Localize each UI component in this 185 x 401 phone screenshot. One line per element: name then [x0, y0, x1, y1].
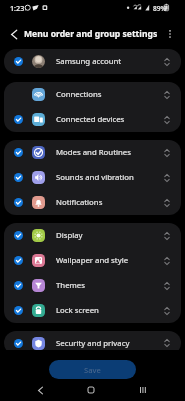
staticText: Connections	[56, 89, 102, 100]
staticText: Themes	[56, 280, 85, 291]
staticText: Wallpaper and style	[56, 255, 129, 266]
button[interactable]: Samsung account	[4, 49, 181, 74]
staticText: Save	[84, 365, 101, 375]
button[interactable]: Reorder Samsung account	[159, 54, 175, 70]
button[interactable]: Modes and Routines	[4, 140, 181, 165]
staticText: 89%	[153, 4, 167, 13]
staticText: Lock screen	[56, 305, 99, 316]
button[interactable]: Display	[4, 223, 181, 248]
staticText: Sounds and vibration	[56, 172, 134, 183]
staticText: Modes and Routines	[56, 147, 131, 158]
button[interactable]: Lock screen	[4, 298, 181, 323]
button[interactable]: Recent apps	[133, 380, 153, 400]
button[interactable]: Wallpaper and style	[4, 248, 181, 273]
button[interactable]: Notifications	[4, 190, 181, 215]
button[interactable]: Reorder Display	[159, 228, 175, 244]
button[interactable]: Reorder Lock screen	[159, 303, 175, 319]
button[interactable]: Save	[49, 360, 136, 379]
button[interactable]: Reorder Themes	[159, 278, 175, 294]
staticText: Display	[56, 230, 83, 241]
button[interactable]: Reorder Connected devices	[159, 112, 175, 128]
button[interactable]: Connected devices	[4, 107, 181, 132]
button[interactable]: Sounds and vibration	[4, 165, 181, 190]
button[interactable]: Connections	[4, 82, 181, 107]
button[interactable]: Reorder Notifications	[159, 195, 175, 211]
staticText: 1:23	[10, 3, 25, 13]
button[interactable]: Home	[81, 380, 101, 400]
button[interactable]: More options	[160, 24, 180, 44]
staticText: Samsung account	[56, 56, 122, 67]
button[interactable]: Security and privacy	[4, 331, 181, 350]
staticText: Security and privacy	[56, 338, 130, 349]
staticText: Menu order and group settings	[24, 28, 158, 40]
button[interactable]: Back	[30, 380, 50, 400]
button[interactable]: Reorder Connections	[159, 87, 175, 103]
button[interactable]: Navigate up	[4, 24, 25, 45]
button[interactable]: Reorder Modes and Routines	[159, 145, 175, 161]
button[interactable]: Themes	[4, 273, 181, 298]
button[interactable]: Reorder Security and privacy	[159, 335, 175, 350]
staticText: Notifications	[56, 197, 103, 208]
button[interactable]: Reorder Sounds and vibration	[159, 170, 175, 186]
button[interactable]: Reorder Wallpaper and style	[159, 253, 175, 269]
staticText: Connected devices	[56, 114, 125, 125]
